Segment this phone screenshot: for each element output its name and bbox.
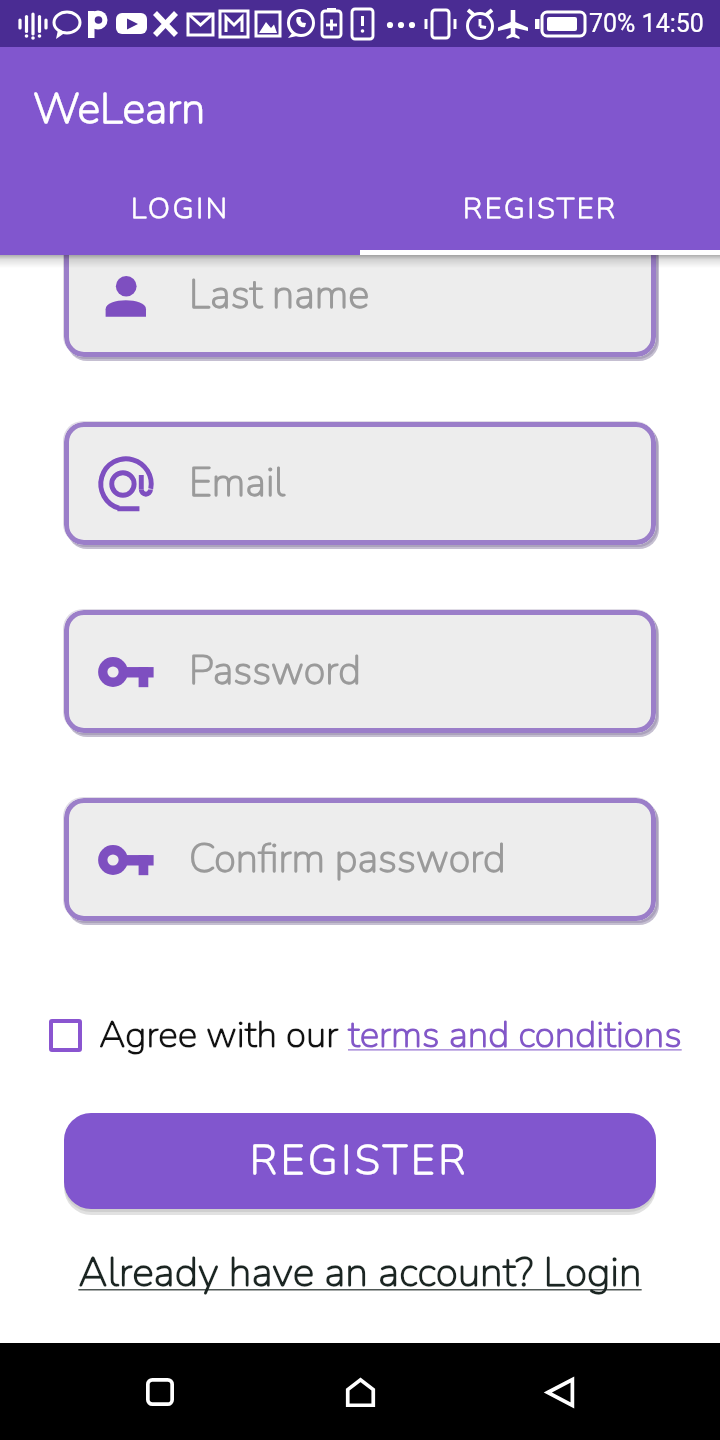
- staticText: Last name: [189, 268, 370, 323]
- staticText: Already have an account? Login: [78, 1245, 642, 1301]
- button[interactable]: REGISTER: [360, 165, 720, 255]
- button[interactable]: Last name: [64, 255, 656, 357]
- button[interactable]: REGISTER: [64, 1113, 656, 1209]
- button[interactable]: Home: [312, 1344, 408, 1440]
- staticText: 70% 14:50: [589, 9, 704, 38]
- staticText: REGISTER: [250, 1133, 470, 1189]
- button[interactable]: Already have an account? Login: [0, 1243, 720, 1303]
- button[interactable]: Email: [64, 422, 656, 545]
- button[interactable]: terms and conditions: [348, 1010, 682, 1060]
- button[interactable]: Back: [512, 1344, 608, 1440]
- button[interactable]: Recents: [112, 1344, 208, 1440]
- staticText: Agree with our: [99, 1010, 348, 1060]
- button[interactable]: Confirm password: [64, 798, 656, 921]
- staticText: LOGIN: [131, 189, 230, 229]
- button[interactable]: LOGIN: [0, 165, 360, 255]
- button[interactable]: Password: [64, 610, 656, 733]
- staticText: Password: [189, 644, 361, 699]
- other: Agree with our terms and conditions chec…: [49, 1019, 82, 1052]
- button[interactable]: Agree with our terms and conditions chec…: [49, 1000, 682, 1070]
- staticText: Confirm password: [189, 832, 506, 887]
- staticText: Email: [189, 456, 286, 511]
- staticText: REGISTER: [463, 189, 618, 229]
- staticText: WeLearn: [33, 80, 205, 139]
